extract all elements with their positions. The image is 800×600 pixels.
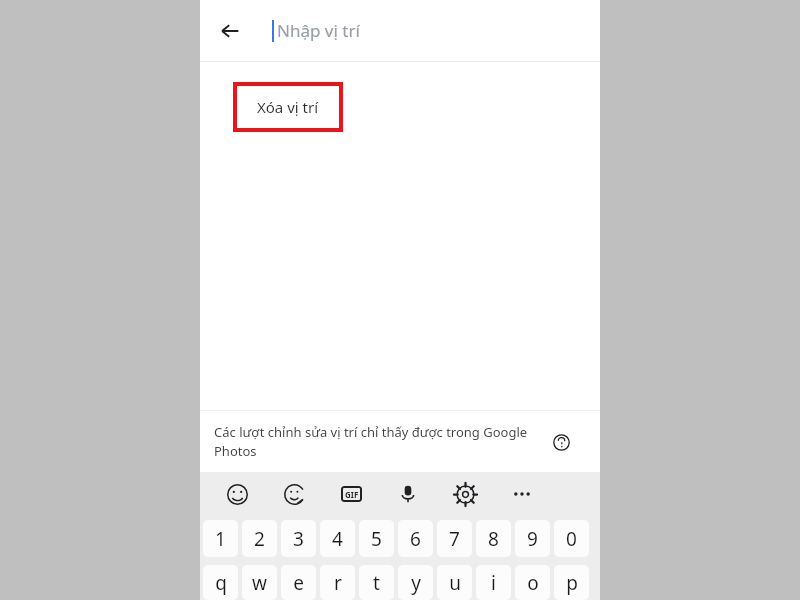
staticText: r [334,570,342,596]
button[interactable]: o [515,565,550,600]
button[interactable]: 7 [437,520,472,557]
button[interactable]: 2 [242,520,277,557]
button[interactable]: Help [544,425,578,459]
button[interactable]: Stickers [279,479,309,509]
staticText: 2 [254,526,265,552]
staticText: Nhập vị trí [277,19,360,42]
button[interactable]: 8 [476,520,511,557]
button[interactable]: 5 [359,520,394,557]
button[interactable]: i [476,565,511,600]
staticText: 9 [527,526,538,552]
staticText: q [215,570,227,596]
button[interactable]: u [437,565,472,600]
button[interactable]: Emoji [222,479,252,509]
button[interactable]: GIF [336,479,366,509]
staticText: Xóa vị trí [257,97,319,117]
button[interactable]: 4 [320,520,355,557]
button[interactable]: q [203,565,238,600]
button[interactable]: Back [208,9,252,53]
button[interactable]: r [320,565,355,600]
button[interactable]: w [242,565,277,600]
staticText: 6 [410,526,421,552]
staticText: e [293,570,304,596]
button[interactable]: More options [507,479,537,509]
button[interactable]: Voice input [393,479,423,509]
staticText: y [411,570,421,596]
button[interactable]: p [554,565,589,600]
staticText: 8 [488,526,499,552]
button[interactable]: Settings [450,479,480,509]
button[interactable]: Các lượt chỉnh sửa vị trí chỉ thấy được … [200,411,600,472]
staticText: u [449,570,461,596]
staticText: 1 [215,526,226,552]
button[interactable]: 3 [281,520,316,557]
staticText: 0 [566,526,577,552]
staticText: GIF [345,489,359,500]
button[interactable]: Xóa vị trí [233,82,343,132]
staticText: 5 [371,526,382,552]
button[interactable]: e [281,565,316,600]
staticText: 3 [293,526,304,552]
button[interactable]: 1 [203,520,238,557]
staticText: Các lượt chỉnh sửa vị trí chỉ thấy được … [214,423,544,460]
button[interactable]: 6 [398,520,433,557]
staticText: o [527,570,539,596]
button[interactable]: 9 [515,520,550,557]
staticText: p [566,570,578,596]
button[interactable]: 0 [554,520,589,557]
staticText: t [373,570,380,596]
staticText: 4 [332,526,343,552]
staticText: w [252,570,267,596]
staticText: i [491,570,496,596]
button[interactable]: y [398,565,433,600]
staticText: 7 [449,526,460,552]
button[interactable]: t [359,565,394,600]
